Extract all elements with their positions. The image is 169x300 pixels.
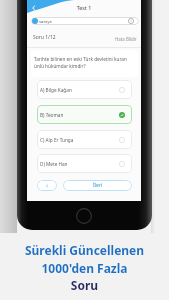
- staticText: A) Bilge Kağan: [40, 87, 72, 93]
- staticText: İleri: [93, 182, 103, 189]
- staticText: B) Teoman: [40, 112, 64, 118]
- staticText: D) Mete Han: [40, 161, 68, 167]
- staticText: saniye: [39, 18, 52, 24]
- button[interactable]: A) Bilge Kağan: [37, 80, 132, 99]
- button[interactable]: C) Alp Er Tunga: [37, 130, 132, 149]
- staticText: Soru 1/12: [33, 34, 56, 41]
- staticText: Test 1: [27, 4, 141, 11]
- staticText: C) Alp Er Tunga: [40, 137, 74, 143]
- staticText: Sürekli Güncellenen: [0, 242, 169, 258]
- button[interactable]: Back: [30, 4, 38, 12]
- staticText: 1000'den Fazla: [0, 260, 169, 276]
- button[interactable]: Hata Bildir: [115, 36, 137, 42]
- staticText: Soru: [0, 277, 169, 293]
- button[interactable]: B) Teoman: [37, 105, 132, 124]
- staticText: Hata Bildir: [115, 36, 137, 42]
- button[interactable]: D) Mete Han: [37, 154, 132, 173]
- button[interactable]: [31, 17, 139, 25]
- staticText: Tarihte bilinen en eski Türk devletini k…: [34, 56, 134, 70]
- button[interactable]: Previous question: [37, 180, 57, 191]
- button[interactable]: İleri: [63, 180, 132, 191]
